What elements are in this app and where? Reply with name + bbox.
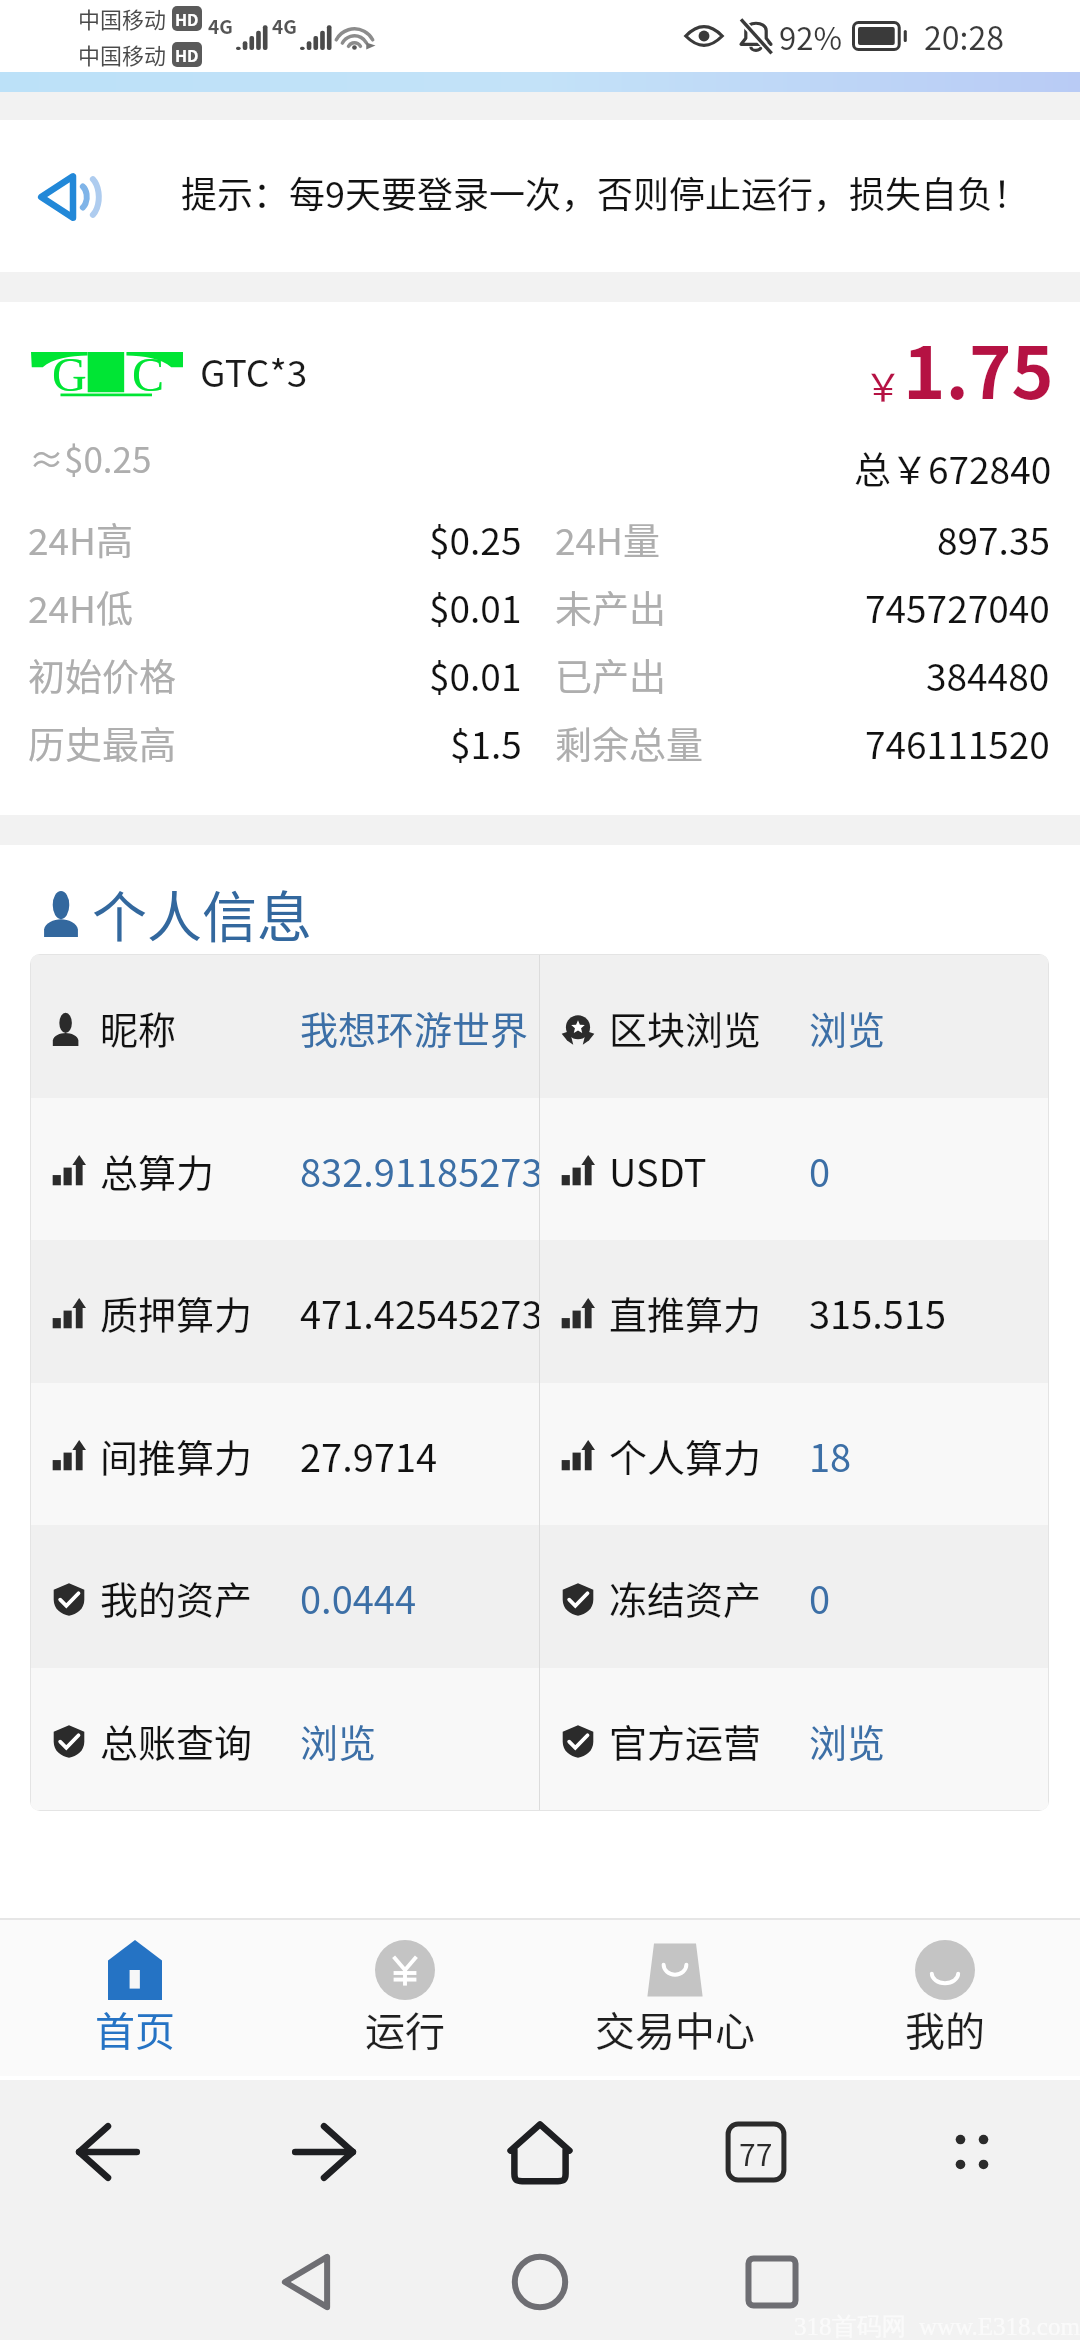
staticText: 总账查询	[100, 1713, 253, 1768]
staticText: USDT	[609, 1143, 707, 1198]
staticText: 832.911852738	[300, 1143, 539, 1198]
button[interactable]: 我的资产	[31, 1525, 539, 1668]
button[interactable]: Tabs	[701, 2080, 811, 2224]
button[interactable]: 官方运营	[540, 1668, 1048, 1810]
staticText: 昵称	[100, 1000, 177, 1055]
staticText: 我的	[905, 2000, 985, 2058]
staticText: 27.9714	[300, 1428, 438, 1483]
staticText: 24H量	[555, 512, 661, 566]
staticText: 0.0444	[300, 1570, 417, 1625]
staticText: 质押算力	[100, 1285, 253, 1340]
staticText: $0.01	[429, 648, 522, 702]
button[interactable]: 总算力	[31, 1098, 539, 1240]
staticText: ≈$0.25	[29, 432, 152, 483]
staticText: 首页	[95, 2000, 175, 2058]
staticText: 18	[809, 1428, 852, 1483]
staticText: 浏览	[809, 1713, 886, 1768]
staticText: G	[52, 348, 87, 392]
staticText: 浏览	[809, 1000, 886, 1055]
staticText: $0.01	[429, 580, 522, 634]
staticText: 冻结资产	[609, 1570, 762, 1625]
staticText: 提示：每9天要登录一次，否则停止运行，损失自负！	[181, 166, 1029, 218]
staticText: 471.425452738	[300, 1285, 539, 1340]
button[interactable]: 直推算力	[540, 1240, 1048, 1383]
staticText: HD	[175, 7, 199, 30]
staticText: C	[132, 348, 165, 392]
button[interactable]: Home	[485, 2224, 595, 2340]
staticText: 746111520	[865, 716, 1050, 770]
staticText: 总￥672840	[854, 441, 1052, 495]
staticText: 中国移动	[78, 2, 167, 34]
staticText: 24H低	[28, 580, 134, 634]
button[interactable]: Back	[53, 2080, 163, 2224]
staticText: 897.35	[937, 512, 1050, 566]
staticText: 4G	[208, 12, 233, 40]
staticText: 我的资产	[100, 1570, 253, 1625]
button[interactable]: 质押算力	[31, 1240, 539, 1383]
staticText: 未产出	[555, 580, 666, 634]
button[interactable]: Back	[251, 2224, 361, 2340]
staticText: 745727040	[865, 580, 1050, 634]
staticText: 4G	[272, 12, 297, 40]
staticText: 历史最高	[28, 716, 176, 770]
staticText: GTC*3	[200, 344, 308, 398]
staticText: 交易中心	[595, 2000, 755, 2058]
staticText: 直推算力	[609, 1285, 762, 1340]
button[interactable]: 我的	[810, 1918, 1080, 2076]
staticText: 315.515	[809, 1285, 947, 1340]
staticText: ￥	[864, 357, 903, 412]
button[interactable]: 个人算力	[540, 1383, 1048, 1525]
staticText: 剩余总量	[555, 716, 703, 770]
staticText: 间推算力	[100, 1428, 253, 1483]
button[interactable]: Recents	[717, 2224, 827, 2340]
button[interactable]: 冻结资产	[540, 1525, 1048, 1668]
staticText: 运行	[365, 2000, 445, 2058]
button[interactable]: Menu	[917, 2080, 1027, 2224]
staticText: 官方运营	[609, 1713, 762, 1768]
staticText: 初始价格	[28, 648, 176, 702]
staticText: 区块浏览	[609, 1000, 762, 1055]
staticText: 384480	[926, 648, 1050, 702]
staticText: 0	[809, 1143, 831, 1198]
button[interactable]: 交易中心	[540, 1918, 810, 2076]
staticText: $0.25	[429, 512, 522, 566]
staticText: 24H高	[28, 512, 134, 566]
staticText: 我想环游世界	[300, 1000, 529, 1055]
staticText: 0	[809, 1570, 831, 1625]
staticText: 已产出	[555, 648, 666, 702]
button[interactable]: 昵称	[31, 955, 539, 1098]
staticText: 浏览	[300, 1713, 377, 1768]
button[interactable]: Forward	[269, 2080, 379, 2224]
button[interactable]: 区块浏览	[540, 955, 1048, 1098]
button[interactable]: USDT	[540, 1098, 1048, 1240]
staticText: 20:28	[924, 13, 1004, 59]
staticText: 92%	[779, 14, 842, 59]
button[interactable]: Announcement	[39, 171, 101, 223]
staticText: 个人信息	[92, 873, 313, 953]
button[interactable]: 间推算力	[31, 1383, 539, 1525]
staticText: 总算力	[100, 1143, 215, 1198]
staticText: HD	[175, 43, 199, 66]
staticText: 中国移动	[78, 38, 167, 70]
button[interactable]: 首页	[0, 1918, 270, 2076]
staticText: 1.75	[903, 315, 1054, 419]
staticText: 77	[739, 2131, 773, 2174]
staticText: 个人算力	[609, 1428, 762, 1483]
staticText: $1.5	[450, 716, 522, 770]
button[interactable]: Home	[485, 2080, 595, 2224]
button[interactable]: 总账查询	[31, 1668, 539, 1810]
button[interactable]: 运行	[270, 1918, 540, 2076]
